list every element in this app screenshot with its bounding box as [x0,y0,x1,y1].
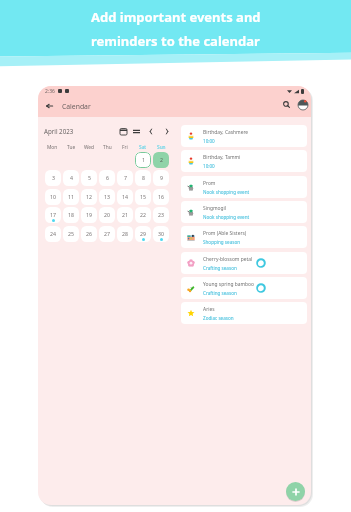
button[interactable]: 23 [153,207,169,223]
button[interactable]: 8 [135,170,151,186]
button[interactable]: Singmogil [181,201,307,223]
staticText: 21 [122,211,128,218]
staticText: Prom [203,180,216,187]
staticText: 25 [68,230,74,237]
button[interactable]: 22 [135,207,151,223]
staticText: 6 [106,174,109,181]
button[interactable]: 6 [99,170,115,186]
staticText: 2:36 [45,88,55,95]
staticText: 30 [158,230,164,237]
staticText: 14 [122,193,128,200]
staticText: 16 [158,193,164,200]
button[interactable]: 24 [45,226,61,242]
staticText: 24 [50,230,56,237]
button[interactable]: Young spring bamboo [181,277,307,299]
staticText: 19 [86,211,92,218]
staticText: April 2023 [44,127,74,135]
staticText: 12 [86,193,92,200]
button[interactable]: 11 [63,189,79,205]
staticText: 11 [68,193,74,200]
button[interactable]: Birthday, Cashmere [181,125,307,147]
button[interactable]: Previous month [145,125,157,137]
button[interactable]: Aries [181,302,307,324]
button[interactable]: 4 [63,170,79,186]
button[interactable]: 28 [117,226,133,242]
button[interactable]: 1 [135,152,151,168]
staticText: 3 [52,174,55,181]
staticText: 10 [50,193,56,200]
staticText: Tue [67,144,76,151]
button[interactable]: Prom [181,176,307,198]
staticText: Cherry-blossom petal [203,256,253,263]
staticText: 8 [142,174,145,181]
staticText: Sun [157,144,166,151]
staticText: Fri [122,144,128,151]
button[interactable]: 14 [117,189,133,205]
staticText: Thu [103,144,112,151]
staticText: 7 [124,174,127,181]
button[interactable]: 20 [99,207,115,223]
staticText: 10:00 [203,138,215,144]
button[interactable]: 5 [81,170,97,186]
button[interactable]: 16 [153,189,169,205]
staticText: 1 [142,156,145,163]
button[interactable]: 29 [135,226,151,242]
button[interactable]: 25 [63,226,79,242]
staticText: 28 [122,230,128,237]
staticText: Shopping season [203,239,241,245]
button[interactable]: 18 [63,207,79,223]
staticText: Zodiac season [203,315,234,321]
staticText: 23 [158,211,164,218]
button[interactable]: Search [279,97,293,111]
staticText: 26 [86,230,92,237]
button[interactable]: Cherry-blossom petal [181,252,307,274]
staticText: 10:00 [203,163,215,169]
staticText: 2 [160,156,163,163]
button[interactable]: 10 [45,189,61,205]
staticText: 18 [68,211,74,218]
staticText: Prom (Able Sisters) [203,230,247,237]
button[interactable]: 21 [117,207,133,223]
button[interactable]: Birthday, Tammi [181,150,307,172]
staticText: 5 [88,174,91,181]
staticText: 20 [104,211,110,218]
staticText: Nook shopping event [203,189,250,195]
staticText: 29 [140,230,146,237]
button[interactable]: 9 [153,170,169,186]
staticText: Young spring bamboo [203,281,254,288]
button[interactable]: Add event [286,482,305,501]
staticText: Birthday, Cashmere [203,129,249,136]
button[interactable]: 13 [99,189,115,205]
staticText: 15 [140,193,146,200]
button[interactable]: 27 [99,226,115,242]
staticText: Aries [203,306,215,313]
button[interactable]: Prom (Able Sisters) [181,226,307,248]
staticText: Add important events and [91,8,261,26]
button[interactable]: 26 [81,226,97,242]
staticText: Crafting season [203,290,237,296]
button[interactable]: 7 [117,170,133,186]
button[interactable]: Month view [117,125,129,137]
staticText: 27 [104,230,110,237]
button[interactable]: 30 [153,226,169,242]
staticText: Crafting season [203,265,237,271]
button[interactable]: 12 [81,189,97,205]
button[interactable]: 15 [135,189,151,205]
button[interactable]: List view [130,125,142,137]
button[interactable]: 3 [45,170,61,186]
staticText: 13 [104,193,110,200]
staticText: 17 [50,211,56,218]
button[interactable]: 19 [81,207,97,223]
staticText: Mon [47,144,58,151]
staticText: Nook shopping event [203,214,250,220]
button[interactable]: Next month [161,125,173,137]
staticText: Birthday, Tammi [203,154,241,161]
button[interactable]: Profile [296,98,310,112]
staticText: 9 [160,174,163,181]
staticText: 4 [70,174,73,181]
button[interactable]: Back [42,99,56,113]
button[interactable]: 17 [45,207,61,223]
staticText: Wed [84,144,95,151]
staticText: reminders to the calendar [91,32,260,50]
button[interactable]: 2 [153,152,169,168]
